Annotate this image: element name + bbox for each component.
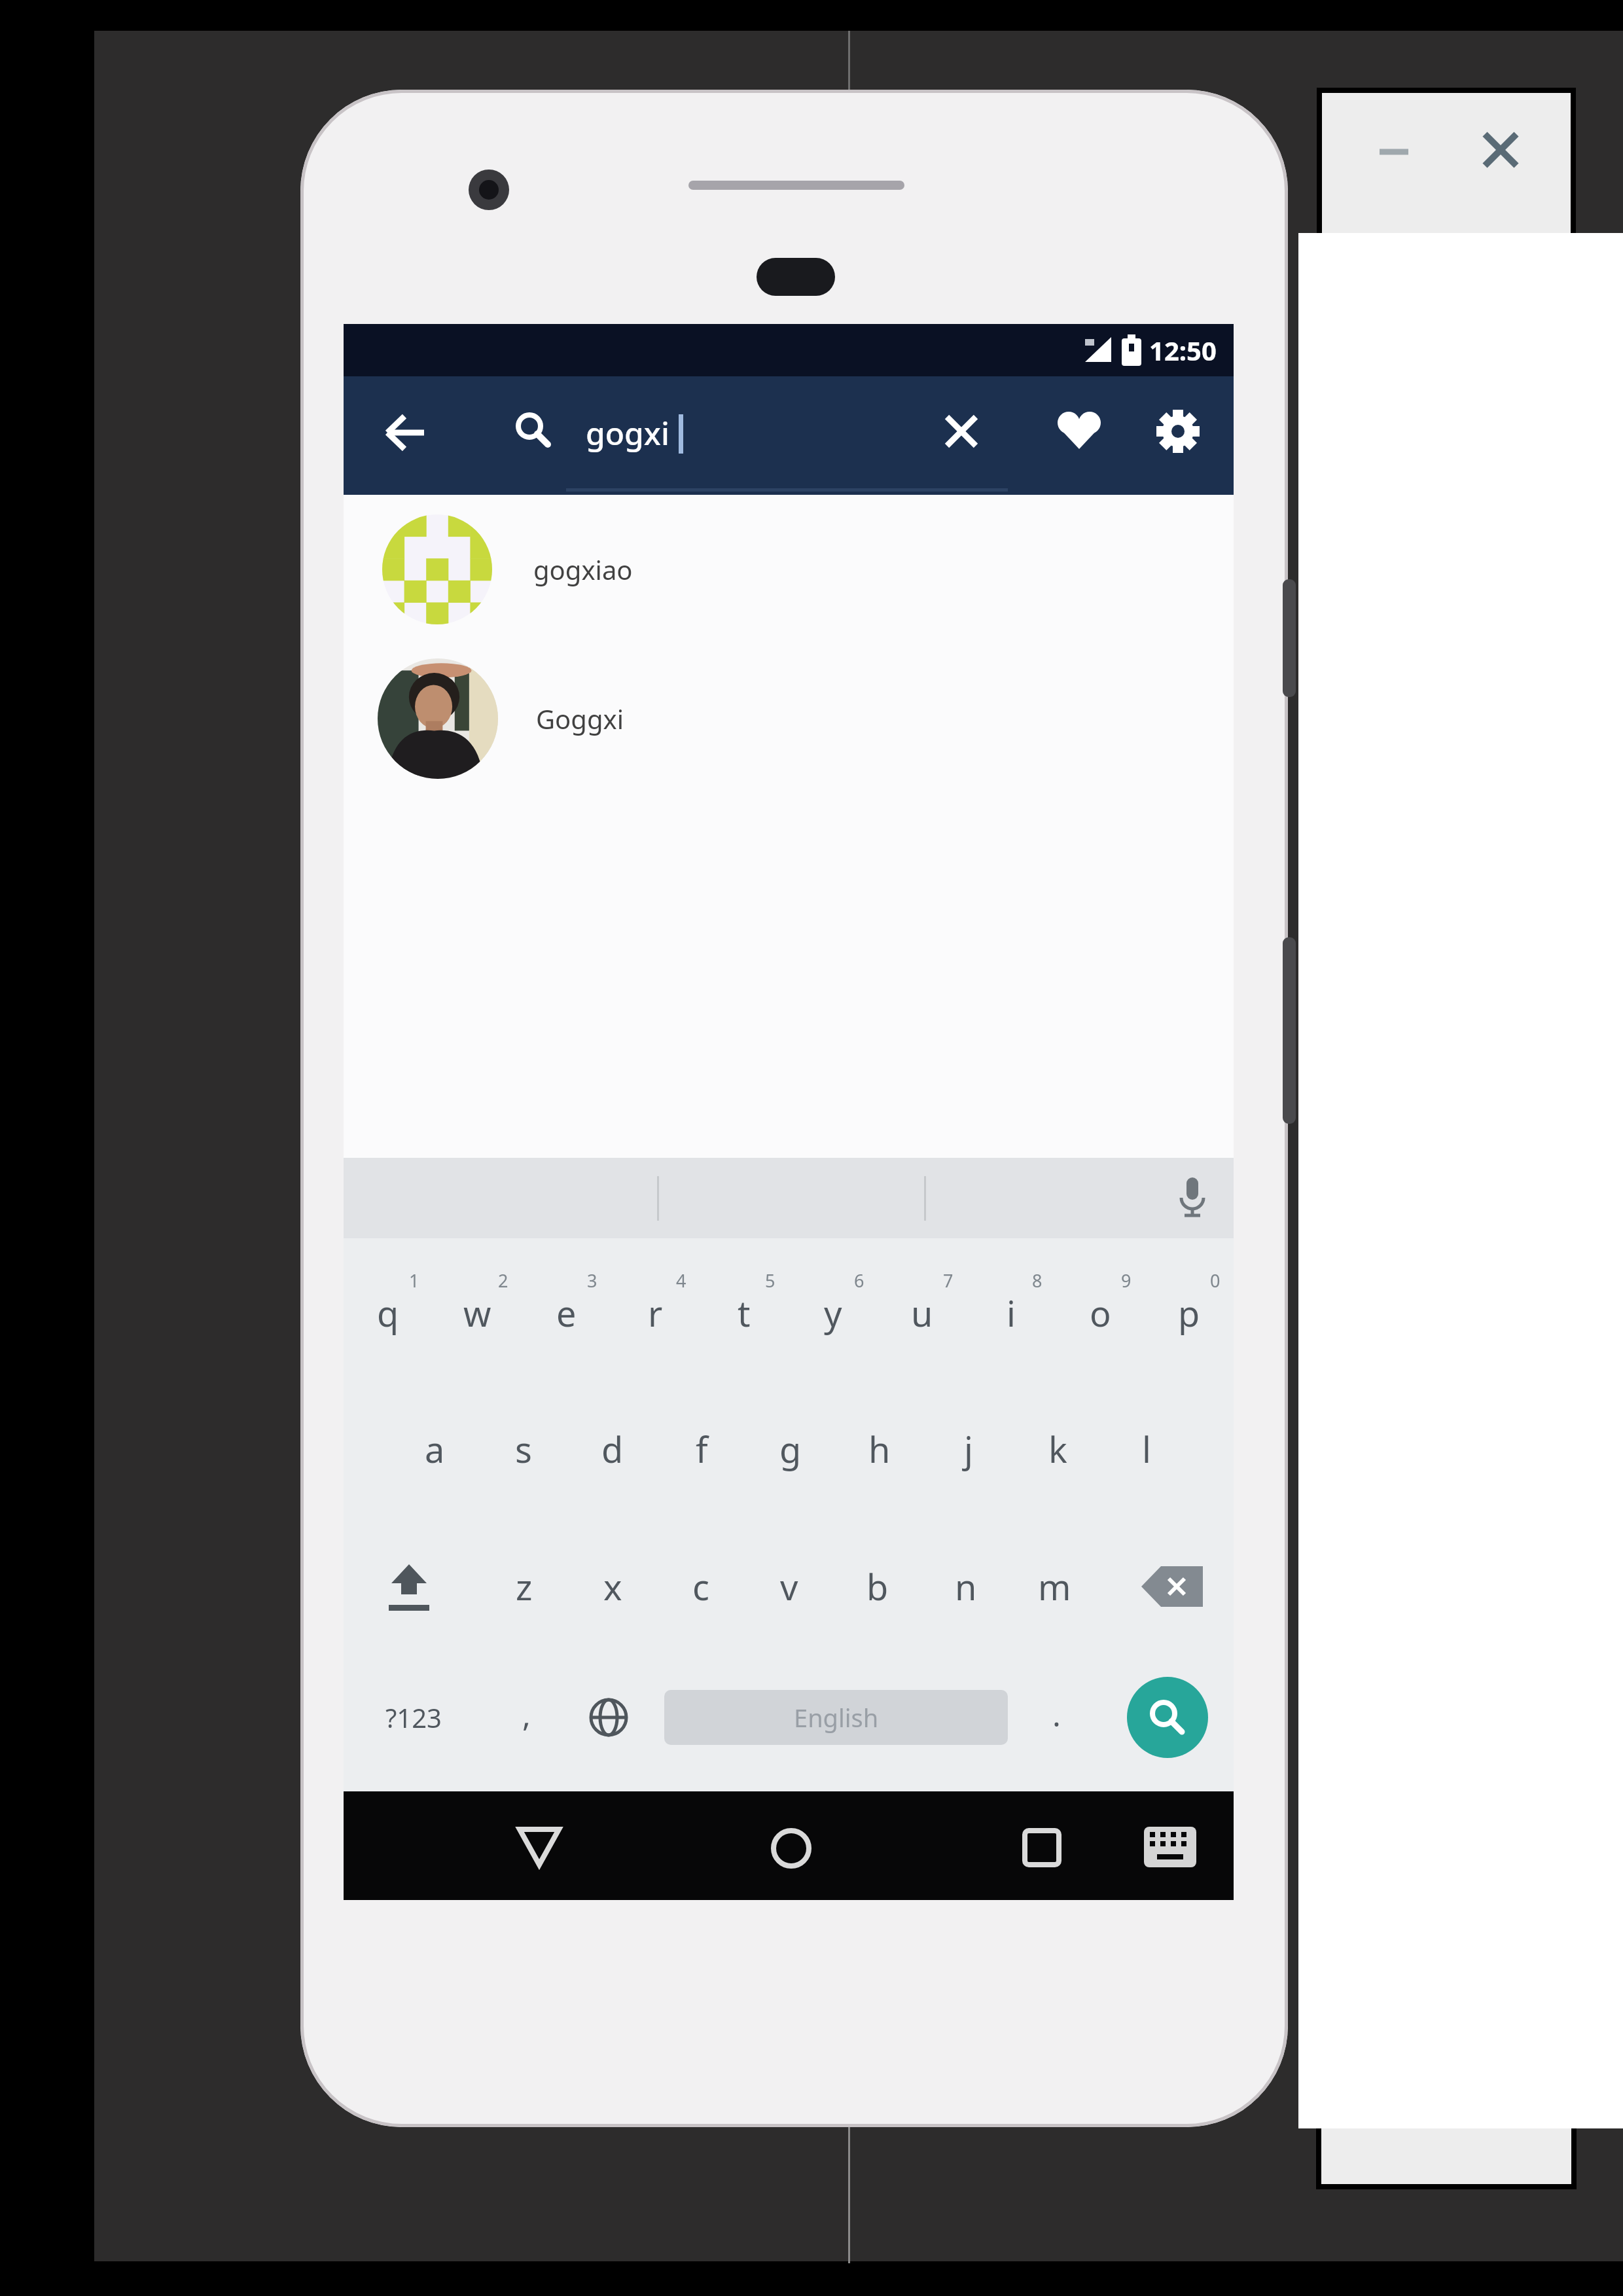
staticText: Goggxi [536,701,624,736]
button[interactable]: English [664,1690,1008,1745]
staticText: z [516,1562,533,1611]
button[interactable] [507,1814,572,1879]
staticText: . [1052,1693,1061,1736]
staticText: 7 [943,1268,954,1293]
staticText: u [911,1289,933,1337]
button[interactable]: a [390,1402,479,1496]
staticText: q [377,1289,399,1337]
staticText: English [794,1700,879,1734]
button[interactable]: i [967,1266,1056,1360]
staticText: 0 [1210,1268,1221,1293]
button[interactable] [758,1816,824,1881]
staticText: m [1038,1562,1071,1611]
button[interactable]: Goggxi [344,656,1234,781]
staticText: f [696,1425,708,1473]
staticText: 6 [854,1268,865,1293]
staticText: gogxi [586,412,669,454]
button[interactable]: c [656,1539,745,1634]
button[interactable]: n [921,1539,1010,1634]
button[interactable]: q [344,1266,433,1360]
staticText: d [601,1425,624,1473]
staticText: , [522,1693,531,1736]
button[interactable]: g [746,1402,835,1496]
button[interactable]: l [1102,1402,1191,1496]
button[interactable] [1132,1554,1211,1619]
staticText: p [1178,1289,1200,1337]
staticText: c [692,1562,709,1611]
button[interactable] [1368,124,1420,177]
staticText: j [964,1425,973,1473]
button[interactable]: s [479,1402,568,1496]
button[interactable] [373,1551,445,1623]
staticText: k [1048,1425,1067,1473]
staticText: s [515,1425,532,1473]
staticText: o [1090,1289,1111,1337]
staticText: y [824,1289,842,1337]
button[interactable] [929,399,994,464]
staticText: 8 [1032,1268,1043,1293]
button[interactable]: u [878,1266,967,1360]
staticText: i [1007,1289,1016,1337]
button[interactable]: h [835,1402,924,1496]
staticText: e [556,1289,577,1337]
staticText: ?123 [385,1700,442,1735]
button[interactable]: y [789,1266,878,1360]
button[interactable] [1009,1815,1075,1880]
staticText: r [648,1289,663,1337]
staticText: a [425,1425,445,1473]
staticText: 3 [587,1268,597,1293]
button[interactable]: b [833,1539,922,1634]
button[interactable] [1134,1820,1206,1879]
button[interactable] [373,400,438,465]
staticText: 9 [1121,1268,1132,1293]
staticText: 1 [409,1268,419,1293]
staticText: 12:50 [1149,332,1217,368]
staticText: b [866,1562,889,1611]
button[interactable]: z [480,1539,569,1634]
staticText: n [955,1562,977,1611]
staticText: w [463,1289,491,1337]
button[interactable]: x [568,1539,657,1634]
button[interactable]: m [1010,1539,1099,1634]
button[interactable]: d [568,1402,657,1496]
staticText: h [868,1425,891,1473]
staticText: t [738,1289,751,1337]
staticText: 4 [676,1268,687,1293]
button[interactable]: p [1145,1266,1234,1360]
button[interactable]: j [924,1402,1013,1496]
button[interactable]: . [1030,1678,1082,1750]
staticText: v [780,1562,798,1611]
button[interactable]: o [1056,1266,1145,1360]
staticText: 5 [765,1268,776,1293]
button[interactable]: , [500,1678,552,1750]
button[interactable] [1127,1677,1208,1758]
button[interactable]: v [745,1539,834,1634]
button[interactable]: w [433,1266,522,1360]
button[interactable] [1169,1172,1215,1226]
button[interactable]: f [657,1402,746,1496]
button[interactable]: e [522,1266,611,1360]
button[interactable]: gogxiao [344,511,1234,628]
staticText: x [603,1562,622,1611]
button[interactable] [501,397,566,463]
button[interactable] [1145,399,1211,464]
staticText: l [1142,1425,1151,1473]
button[interactable]: ?123 [361,1685,466,1750]
button[interactable]: t [700,1266,789,1360]
staticText: g [779,1425,802,1473]
button[interactable] [1474,124,1527,176]
button[interactable] [1046,399,1112,464]
staticText: gogxiao [533,552,633,587]
button[interactable]: r [611,1266,700,1360]
button[interactable]: k [1013,1402,1102,1496]
staticText: 2 [498,1268,508,1293]
button[interactable] [576,1685,641,1750]
